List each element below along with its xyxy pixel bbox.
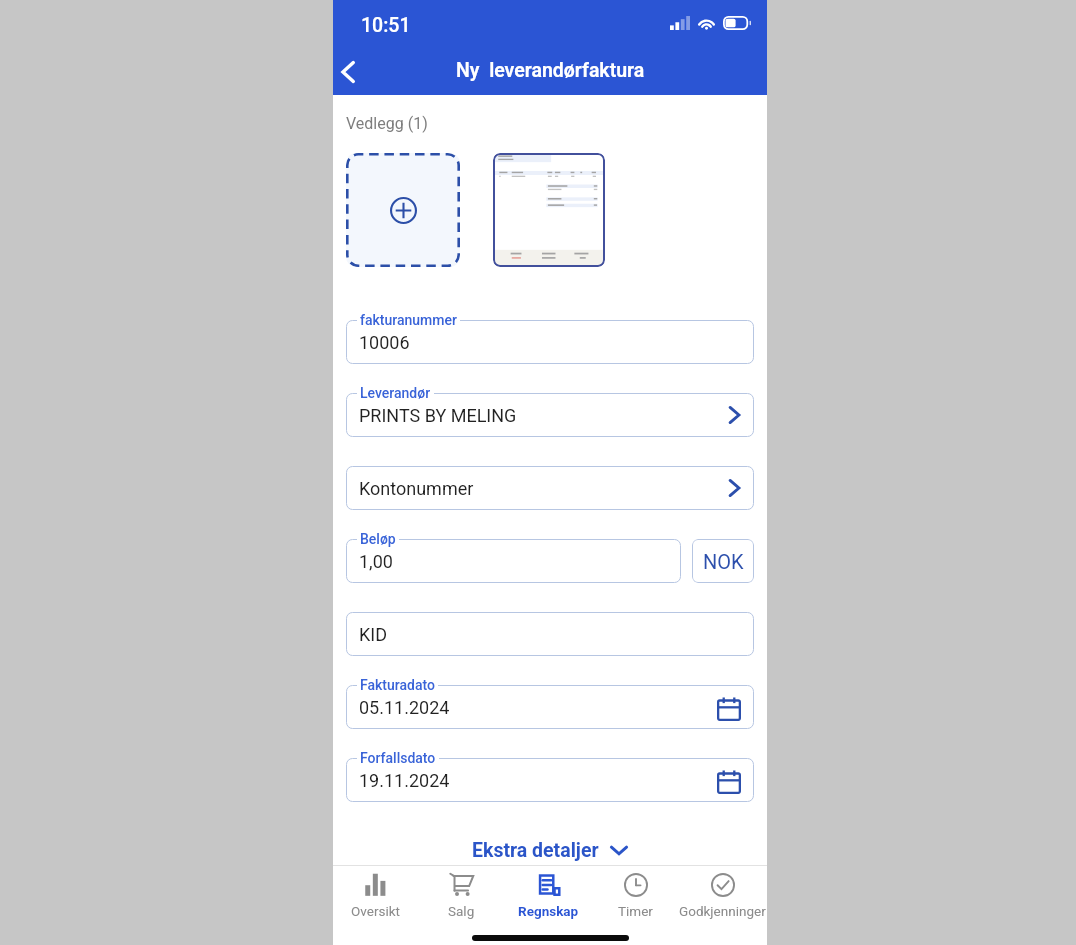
staticText: Kontonummer	[359, 478, 474, 499]
staticText: NOK	[703, 550, 744, 573]
button[interactable]: Oversikt	[333, 866, 418, 924]
staticText: Godkjenninger	[679, 903, 766, 919]
staticText: Forfallsdato	[360, 750, 436, 766]
staticText: KID	[359, 624, 388, 645]
button[interactable]: Legg til vedlegg	[346, 153, 460, 267]
button[interactable]: NOK	[692, 539, 754, 583]
button[interactable]: Timer	[592, 866, 679, 924]
staticText: 10:51	[361, 14, 411, 37]
staticText: Beløp	[360, 531, 396, 547]
staticText: 19.11.2024	[359, 770, 450, 791]
staticText: Salg	[448, 903, 475, 919]
staticText: Timer	[618, 903, 653, 919]
staticText: 05.11.2024	[359, 697, 450, 718]
button[interactable]: Regnskap	[505, 866, 592, 924]
staticText: fakturanummer	[360, 312, 457, 328]
button[interactable]: Tilbake	[333, 47, 381, 95]
staticText: Oversikt	[351, 903, 400, 919]
staticText: Ny leverandørfaktura	[456, 59, 645, 82]
staticText: Ekstra detaljer	[472, 839, 599, 862]
staticText: 1,00	[359, 551, 393, 572]
staticText: Vedlegg (1)	[346, 114, 428, 133]
staticText: 10006	[359, 332, 410, 353]
staticText: Fakturadato	[360, 677, 435, 693]
staticText: Regnskap	[518, 903, 579, 919]
button[interactable]: Salg	[418, 866, 505, 924]
staticText: PRINTS BY MELING	[359, 405, 517, 426]
button[interactable]: Vedlegg forhåndsvisning	[493, 153, 605, 267]
button[interactable]: Godkjenninger	[679, 866, 766, 924]
button[interactable]: Ekstra detaljer	[333, 833, 767, 867]
staticText: Leverandør	[360, 385, 431, 401]
